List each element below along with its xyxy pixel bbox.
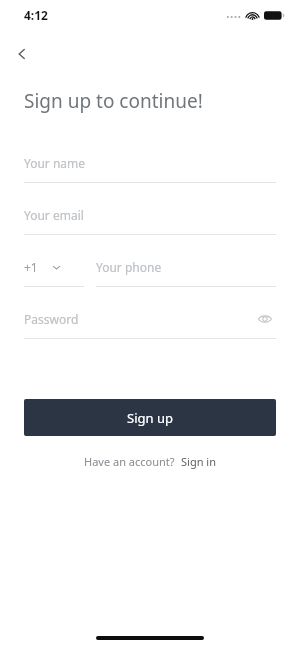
staticText: Your phone [96,259,162,275]
staticText: Have an account? [84,454,175,469]
staticText: Sign up to continue! [24,88,203,114]
button[interactable]: Your name [24,152,276,183]
staticText: 4:12 [24,7,48,23]
button[interactable]: +1 [24,256,84,287]
button[interactable]: Show password [254,308,276,330]
button[interactable]: Back [8,40,36,68]
staticText: Your email [24,207,84,223]
staticText: Password [24,311,79,327]
button[interactable]: Your email [24,204,276,235]
staticText: Sign in [181,454,216,469]
button[interactable]: Sign in [181,454,216,469]
button[interactable]: Sign up [24,399,276,436]
staticText: Your name [24,155,86,171]
staticText: Sign up [127,409,173,427]
staticText: +1 [24,259,38,275]
button[interactable]: Your phone [96,256,276,287]
